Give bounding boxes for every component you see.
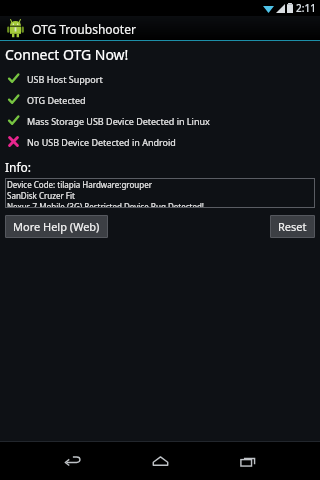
button[interactable]: Check: [5, 93, 315, 106]
button[interactable]: Reset: [270, 215, 315, 238]
staticText: SanDisk Cruzer Fit: [7, 190, 75, 201]
button[interactable]: Check: [5, 114, 315, 127]
staticText: No USB Device Detected in Android: [27, 136, 176, 148]
button[interactable]: Failed: [5, 135, 315, 148]
staticText: OTG Troubshooter: [32, 21, 136, 37]
staticText: More Help (Web): [13, 219, 100, 234]
staticText: Nexus 7 Mobile (3G) Restricted Device Bu…: [7, 201, 204, 207]
staticText: OTG Detected: [27, 94, 86, 106]
other: Failed: [7, 135, 20, 148]
button[interactable]: Home: [138, 442, 182, 480]
other: Check: [7, 114, 20, 127]
button[interactable]: Check: [5, 72, 315, 85]
staticText: Reset: [278, 219, 307, 234]
staticText: Connect OTG Now!: [5, 45, 129, 64]
button[interactable]: More Help (Web): [5, 215, 108, 238]
staticText: 2:11: [296, 1, 316, 15]
staticText: USB Host Support: [27, 73, 103, 85]
staticText: Mass Storage USB Device Detected in Linu…: [27, 115, 210, 127]
staticText: Device Code: tilapia Hardware:grouper: [7, 179, 152, 190]
other: Check: [7, 93, 20, 106]
other: Check: [7, 72, 20, 85]
button[interactable]: Recent apps: [226, 442, 270, 480]
button[interactable]: Back: [50, 442, 94, 480]
staticText: Info:: [5, 159, 32, 175]
